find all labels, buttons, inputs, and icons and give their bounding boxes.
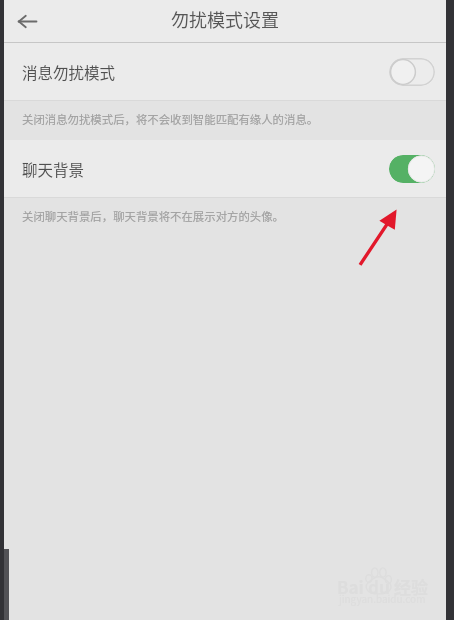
staticText: 消息勿扰模式 xyxy=(22,61,116,83)
staticText: 聊天背景 xyxy=(22,158,85,180)
staticText: 关闭消息勿扰模式后，将不会收到智能匹配有缘人的消息。 xyxy=(22,111,319,128)
staticText: 关闭聊天背景后，聊天背景将不在展示对方的头像。 xyxy=(22,208,284,225)
button[interactable]: Switch on xyxy=(389,155,435,183)
button[interactable]: 消息勿扰模式 xyxy=(4,43,446,101)
staticText: 勿扰模式设置 xyxy=(171,6,279,32)
button[interactable]: Switch off xyxy=(389,58,435,86)
button[interactable]: Back xyxy=(6,0,49,43)
button[interactable]: 聊天背景 xyxy=(4,140,446,198)
